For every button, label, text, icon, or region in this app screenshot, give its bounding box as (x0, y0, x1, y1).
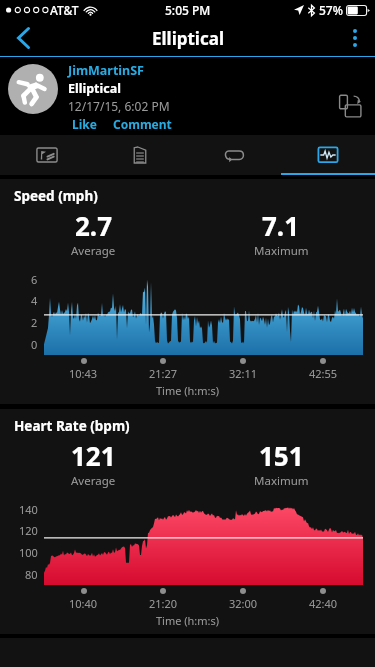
staticText: 4 (31, 293, 38, 308)
staticText: Speed (mph) (14, 187, 98, 205)
button[interactable]: Share to device (333, 90, 367, 124)
button[interactable]: Profile photo (8, 64, 58, 114)
button[interactable]: JimMartinSF (68, 62, 144, 79)
button[interactable]: Details (93, 135, 187, 175)
staticText: 10:40 (69, 596, 98, 611)
staticText: Maximum (254, 473, 309, 489)
button[interactable]: Map (0, 135, 93, 175)
staticText: 6 (31, 272, 38, 287)
staticText: Average (71, 473, 116, 489)
staticText: 7.1 (262, 208, 300, 243)
staticText: 42:40 (309, 596, 338, 611)
button[interactable]: Comment (109, 116, 176, 132)
staticText: 32:11 (229, 366, 258, 381)
staticText: 120 (19, 523, 38, 538)
staticText: Time (h:m:s) (0, 613, 375, 628)
staticText: Like (72, 116, 97, 132)
button[interactable]: More options (335, 20, 375, 56)
staticText: 32:00 (229, 596, 258, 611)
staticText: Time (h:m:s) (0, 383, 375, 398)
staticText: 21:20 (149, 596, 178, 611)
staticText: Comment (113, 116, 172, 132)
staticText: 0 (31, 337, 38, 352)
staticText: 5:05 PM (165, 2, 211, 18)
staticText: 151 (259, 438, 304, 473)
staticText: 10:43 (69, 366, 98, 381)
staticText: 121 (71, 438, 116, 473)
staticText: Average (71, 243, 116, 259)
staticText: 2.7 (75, 208, 113, 243)
staticText: 57% (319, 2, 343, 18)
staticText: 21:27 (149, 366, 178, 381)
button[interactable]: Laps (187, 135, 281, 175)
button[interactable]: Back (0, 20, 46, 56)
staticText: Heart Rate (bpm) (14, 417, 130, 435)
staticText: 12/17/15, 6:02 PM (68, 98, 170, 114)
staticText: 100 (19, 545, 38, 560)
staticText: AT&T (50, 2, 79, 18)
button[interactable]: Charts (281, 135, 375, 175)
button[interactable]: Like (68, 116, 101, 132)
staticText: 2 (31, 315, 38, 330)
staticText: Elliptical (152, 27, 224, 50)
staticText: 140 (19, 502, 38, 517)
staticText: Elliptical (68, 80, 121, 97)
staticText: 42:55 (309, 366, 338, 381)
staticText: Maximum (254, 243, 309, 259)
staticText: 80 (25, 567, 38, 582)
